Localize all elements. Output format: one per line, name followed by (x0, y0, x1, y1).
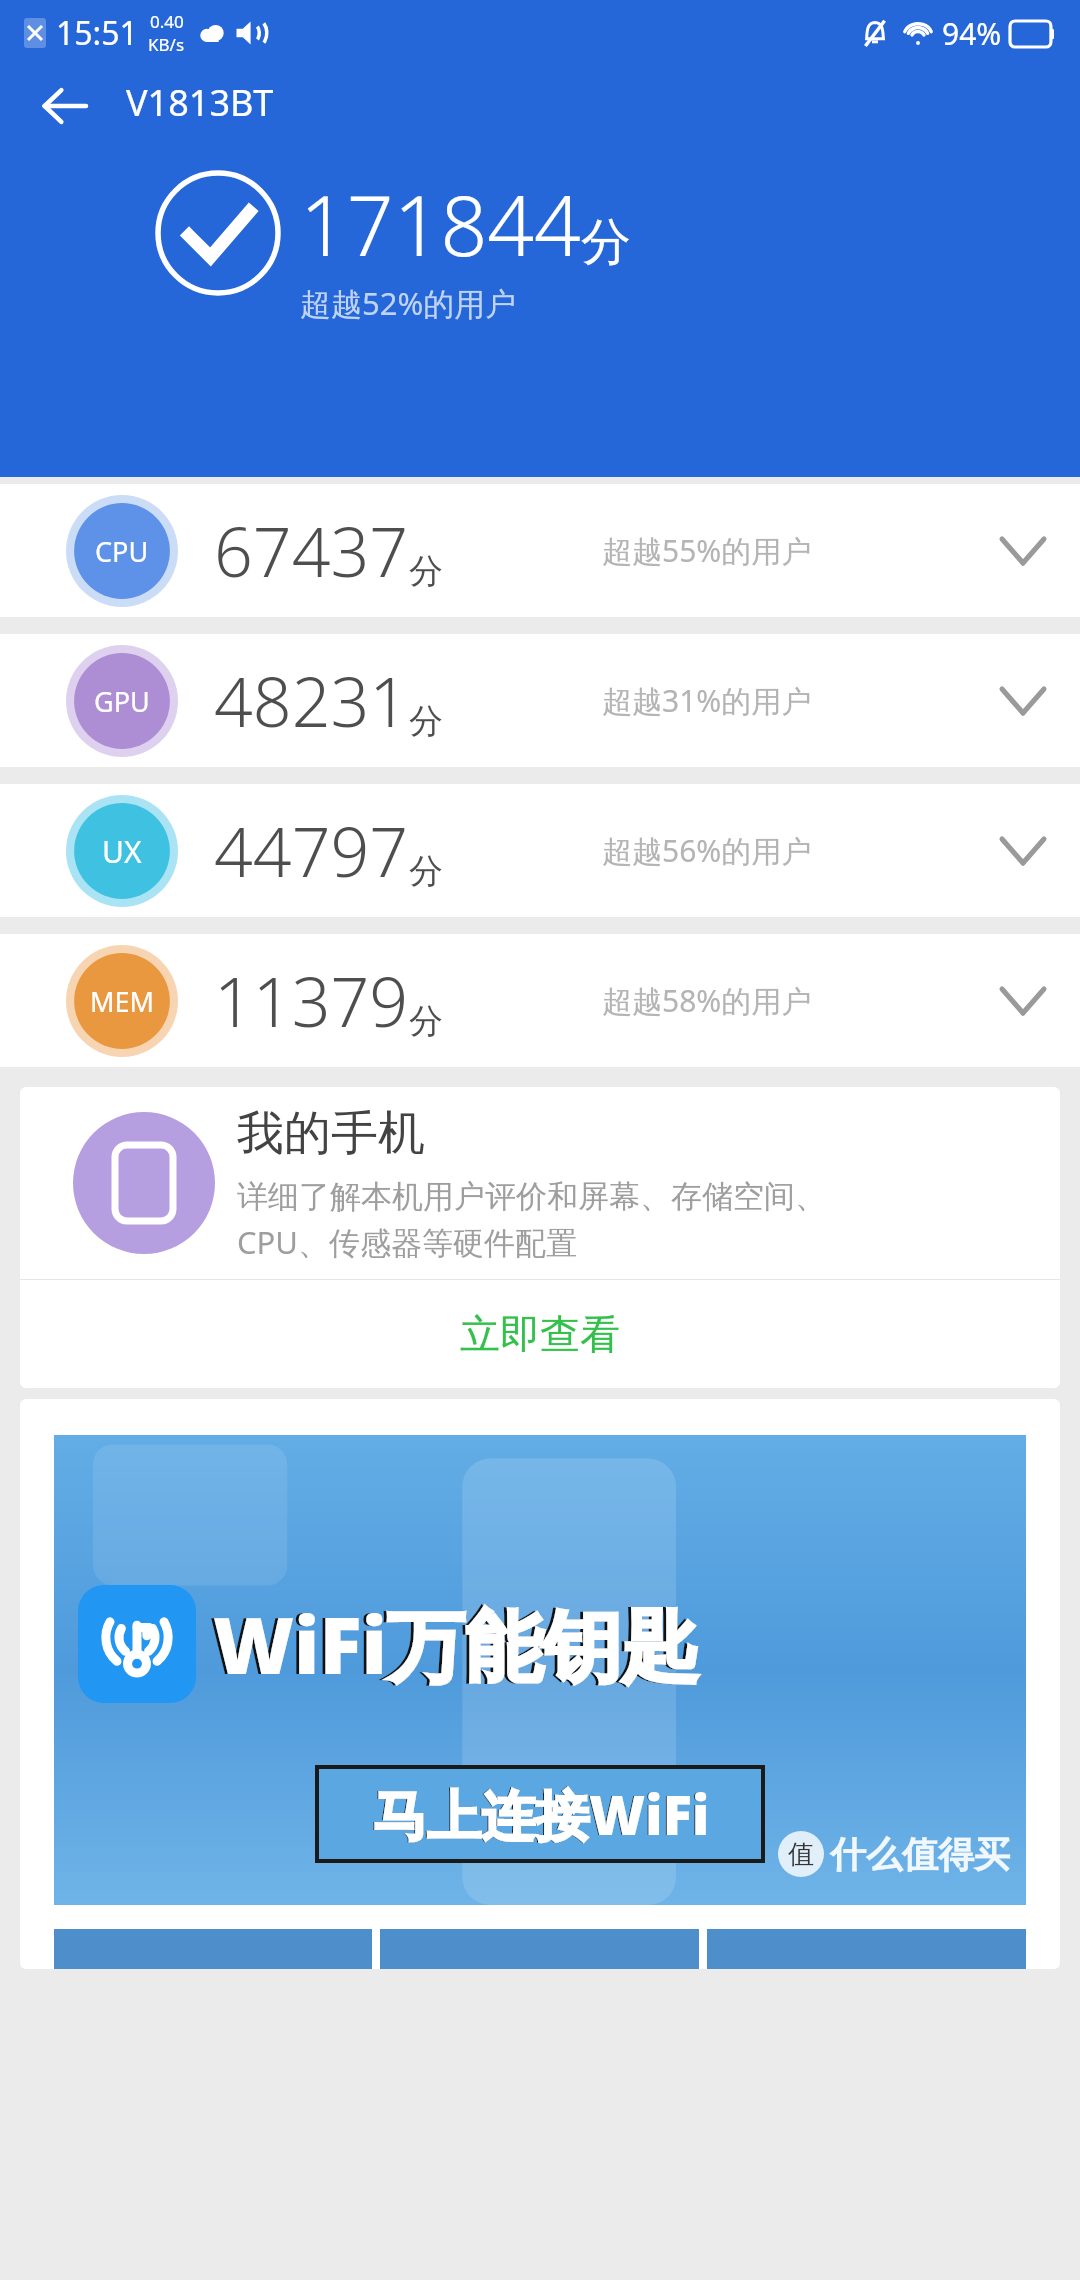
staticText: 马上连接WiFi (372, 1777, 709, 1851)
staticText: 值 (788, 1838, 814, 1871)
staticText: 分 (581, 211, 631, 274)
staticText: 分 (409, 850, 443, 893)
staticText: V1813BT (126, 78, 274, 127)
staticText: 44797 (214, 804, 409, 897)
staticText: CPU (95, 533, 149, 570)
staticText: 超越55%的用户 (602, 530, 812, 571)
staticText: GPU (94, 683, 150, 720)
button[interactable]: CPU (0, 484, 1080, 617)
staticText: KB/s (148, 33, 185, 56)
staticText: 48231 (214, 654, 409, 747)
staticText: 分 (409, 700, 443, 743)
staticText: UX (102, 831, 142, 872)
button[interactable]: Expand GPU (978, 656, 1068, 746)
staticText: 分 (409, 1000, 443, 1043)
staticText: MEM (90, 983, 154, 1020)
staticText: 94% (942, 13, 1002, 54)
staticText: 超越56%的用户 (602, 830, 812, 871)
button[interactable]: MEM (0, 934, 1080, 1067)
staticText: 分 (409, 550, 443, 593)
button[interactable]: UX (0, 784, 1080, 917)
staticText: 67437 (214, 504, 409, 597)
staticText: 我的手机 (237, 1104, 425, 1163)
staticText: WiFi万能钥匙 (213, 1591, 699, 1698)
staticText: 超越58%的用户 (602, 980, 812, 1021)
staticText: 11379 (214, 954, 409, 1047)
staticText: 马上连接WiFi (373, 1777, 710, 1851)
button[interactable]: GPU (0, 634, 1080, 767)
button[interactable]: Expand CPU (978, 506, 1068, 596)
staticText: 超越52%的用户 (300, 282, 517, 324)
button[interactable]: Expand MEM (978, 956, 1068, 1046)
staticText: 15:51 (56, 11, 138, 55)
button[interactable]: 立即查看 (20, 1280, 1060, 1388)
button[interactable]: Expand UX (978, 806, 1068, 896)
button[interactable]: WiFi 万能钥匙 advertisement (20, 1399, 1060, 1969)
staticText: 超越31%的用户 (602, 680, 812, 721)
staticText: 立即查看 (460, 1309, 620, 1359)
staticText: WiFi万能钥匙 (210, 1591, 696, 1698)
button[interactable]: Back (28, 70, 100, 142)
button[interactable]: 我的手机 (20, 1087, 1060, 1279)
staticText: 详细了解本机用户评价和屏幕、存储空间、 CPU、传感器等硬件配置 (237, 1177, 826, 1263)
staticText: 0.40 (150, 10, 184, 33)
staticText: 什么值得买 (830, 1832, 1010, 1877)
staticText: 171844 (300, 168, 581, 280)
